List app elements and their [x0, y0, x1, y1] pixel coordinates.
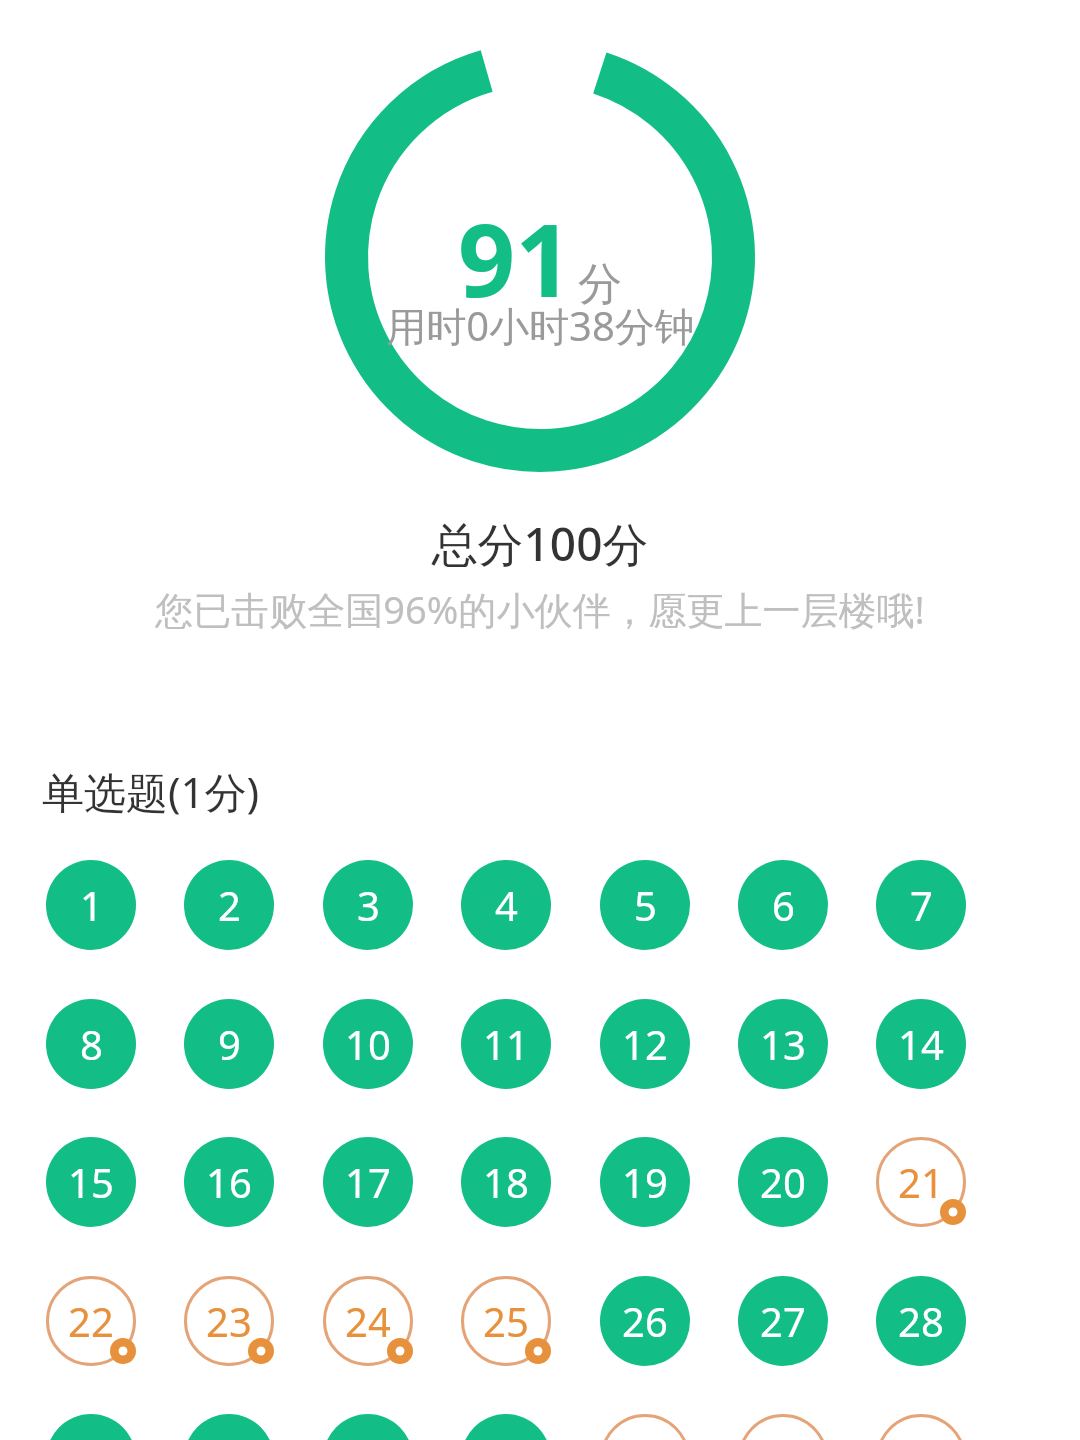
button[interactable]: 1: [46, 860, 136, 950]
button[interactable]: 11: [461, 999, 551, 1089]
button[interactable]: 4: [461, 860, 551, 950]
button[interactable]: 30: [184, 1414, 274, 1440]
button[interactable]: 16: [184, 1137, 274, 1227]
staticText: 18: [483, 1155, 529, 1209]
staticText: 16: [206, 1155, 252, 1209]
button[interactable]: 29: [46, 1414, 136, 1440]
button[interactable]: Question 24, unanswered: [323, 1276, 437, 1390]
staticText: 28: [898, 1294, 944, 1348]
button[interactable]: 14: [876, 999, 966, 1089]
staticText: 用时0小时38分钟: [386, 298, 695, 353]
button[interactable]: Question 33, unanswered: [600, 1414, 714, 1440]
staticText: 单选题(1分): [42, 763, 260, 820]
button[interactable]: Question 25, unanswered: [461, 1276, 575, 1390]
button[interactable]: 26: [600, 1276, 690, 1366]
staticText: 24: [345, 1294, 391, 1348]
staticText: 8: [80, 1017, 103, 1071]
button[interactable]: 32: [461, 1414, 551, 1440]
button[interactable]: Question 35, unanswered: [876, 1414, 990, 1440]
button[interactable]: 31: [323, 1414, 413, 1440]
button[interactable]: 7: [876, 860, 966, 950]
button[interactable]: Question 22, unanswered: [46, 1276, 160, 1390]
button[interactable]: 18: [461, 1137, 551, 1227]
button[interactable]: 6: [738, 860, 828, 950]
staticText: 您已击败全国96%的小伙伴，愿更上一层楼哦!: [0, 583, 1080, 635]
staticText: 21: [898, 1155, 944, 1209]
button[interactable]: 9: [184, 999, 274, 1089]
button[interactable]: Question 23, unanswered: [184, 1276, 298, 1390]
button[interactable]: 2: [184, 860, 274, 950]
staticText: 14: [898, 1017, 944, 1071]
button[interactable]: 8: [46, 999, 136, 1089]
staticText: 10: [345, 1017, 391, 1071]
staticText: 11: [483, 1017, 529, 1071]
staticText: 25: [483, 1294, 529, 1348]
button[interactable]: 17: [323, 1137, 413, 1227]
button[interactable]: 3: [323, 860, 413, 950]
staticText: 19: [622, 1155, 668, 1209]
staticText: 分: [578, 257, 622, 312]
staticText: 22: [68, 1294, 114, 1348]
staticText: 总分100分: [0, 512, 1080, 575]
staticText: 2: [218, 878, 241, 932]
button[interactable]: 10: [323, 999, 413, 1089]
button[interactable]: 15: [46, 1137, 136, 1227]
staticText: 20: [760, 1155, 806, 1209]
staticText: 9: [218, 1017, 241, 1071]
staticText: 6: [772, 878, 795, 932]
button[interactable]: 5: [600, 860, 690, 950]
staticText: 17: [345, 1155, 391, 1209]
staticText: 7: [910, 878, 933, 932]
staticText: 12: [622, 1017, 668, 1071]
button[interactable]: Question 21, unanswered: [876, 1137, 990, 1251]
staticText: 1: [80, 878, 103, 932]
staticText: 15: [68, 1155, 114, 1209]
button[interactable]: 12: [600, 999, 690, 1089]
staticText: 91: [458, 190, 573, 326]
staticText: 3: [357, 878, 380, 932]
button[interactable]: 28: [876, 1276, 966, 1366]
staticText: 5: [634, 878, 657, 932]
staticText: 13: [760, 1017, 806, 1071]
button[interactable]: 13: [738, 999, 828, 1089]
button[interactable]: 27: [738, 1276, 828, 1366]
button[interactable]: Question 34, unanswered: [738, 1414, 852, 1440]
staticText: 26: [622, 1294, 668, 1348]
staticText: 27: [760, 1294, 806, 1348]
staticText: 4: [495, 878, 518, 932]
staticText: 23: [206, 1294, 252, 1348]
button[interactable]: 19: [600, 1137, 690, 1227]
button[interactable]: 20: [738, 1137, 828, 1227]
